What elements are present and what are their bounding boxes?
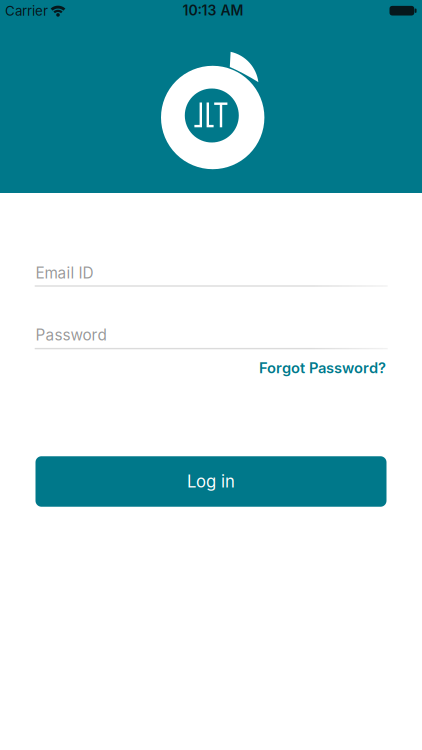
staticText: Carrier [5,3,48,19]
staticText: Email ID [35,264,93,282]
button[interactable]: Log in [35,456,386,507]
button[interactable]: Email ID [35,253,388,287]
staticText: Log in [187,471,235,492]
staticText: 10:13 AM [182,2,243,19]
button[interactable]: Password [35,316,388,350]
button[interactable]: Forgot Password? [136,359,386,377]
staticText: Forgot Password? [259,359,386,377]
staticText: Password [35,326,106,344]
